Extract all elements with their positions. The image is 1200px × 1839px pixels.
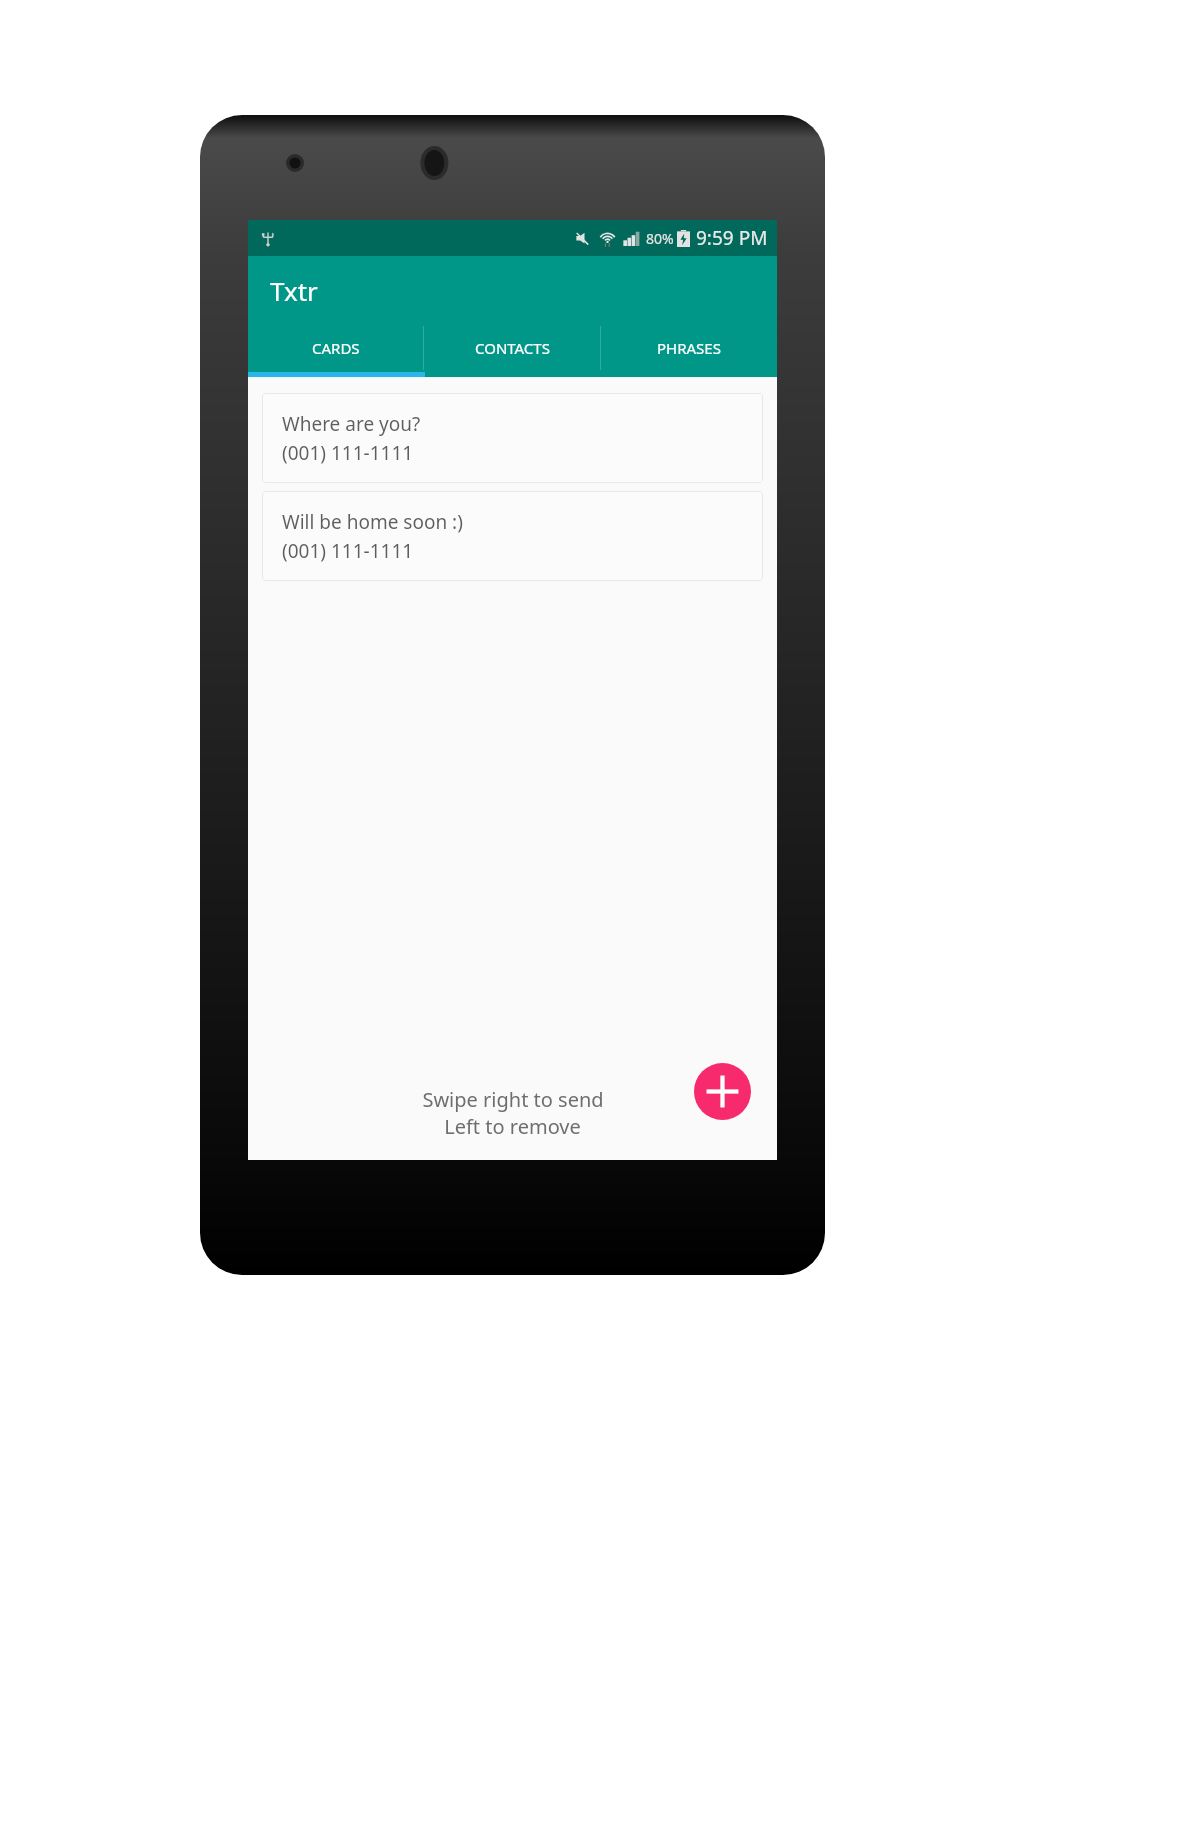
- button[interactable]: PHRASES: [601, 324, 777, 372]
- button[interactable]: CARDS: [248, 324, 423, 372]
- staticText: Where are you?: [282, 411, 421, 437]
- staticText: PHRASES: [657, 338, 721, 358]
- staticText: CONTACTS: [475, 338, 550, 358]
- staticText: 80%: [646, 229, 674, 248]
- staticText: (001) 111-1111: [282, 538, 414, 564]
- button[interactable]: Will be home soon :): [262, 491, 763, 581]
- button[interactable]: Where are you?: [262, 393, 763, 483]
- staticText: 9:59 PM: [696, 225, 768, 251]
- staticText: Will be home soon :): [282, 509, 463, 535]
- staticText: Txtr: [270, 273, 318, 308]
- button[interactable]: CONTACTS: [424, 324, 600, 372]
- staticText: Swipe right to send: [422, 1086, 604, 1113]
- button[interactable]: Add card: [694, 1063, 751, 1120]
- staticText: (001) 111-1111: [282, 440, 414, 466]
- staticText: Left to remove: [444, 1113, 581, 1140]
- staticText: CARDS: [312, 338, 360, 358]
